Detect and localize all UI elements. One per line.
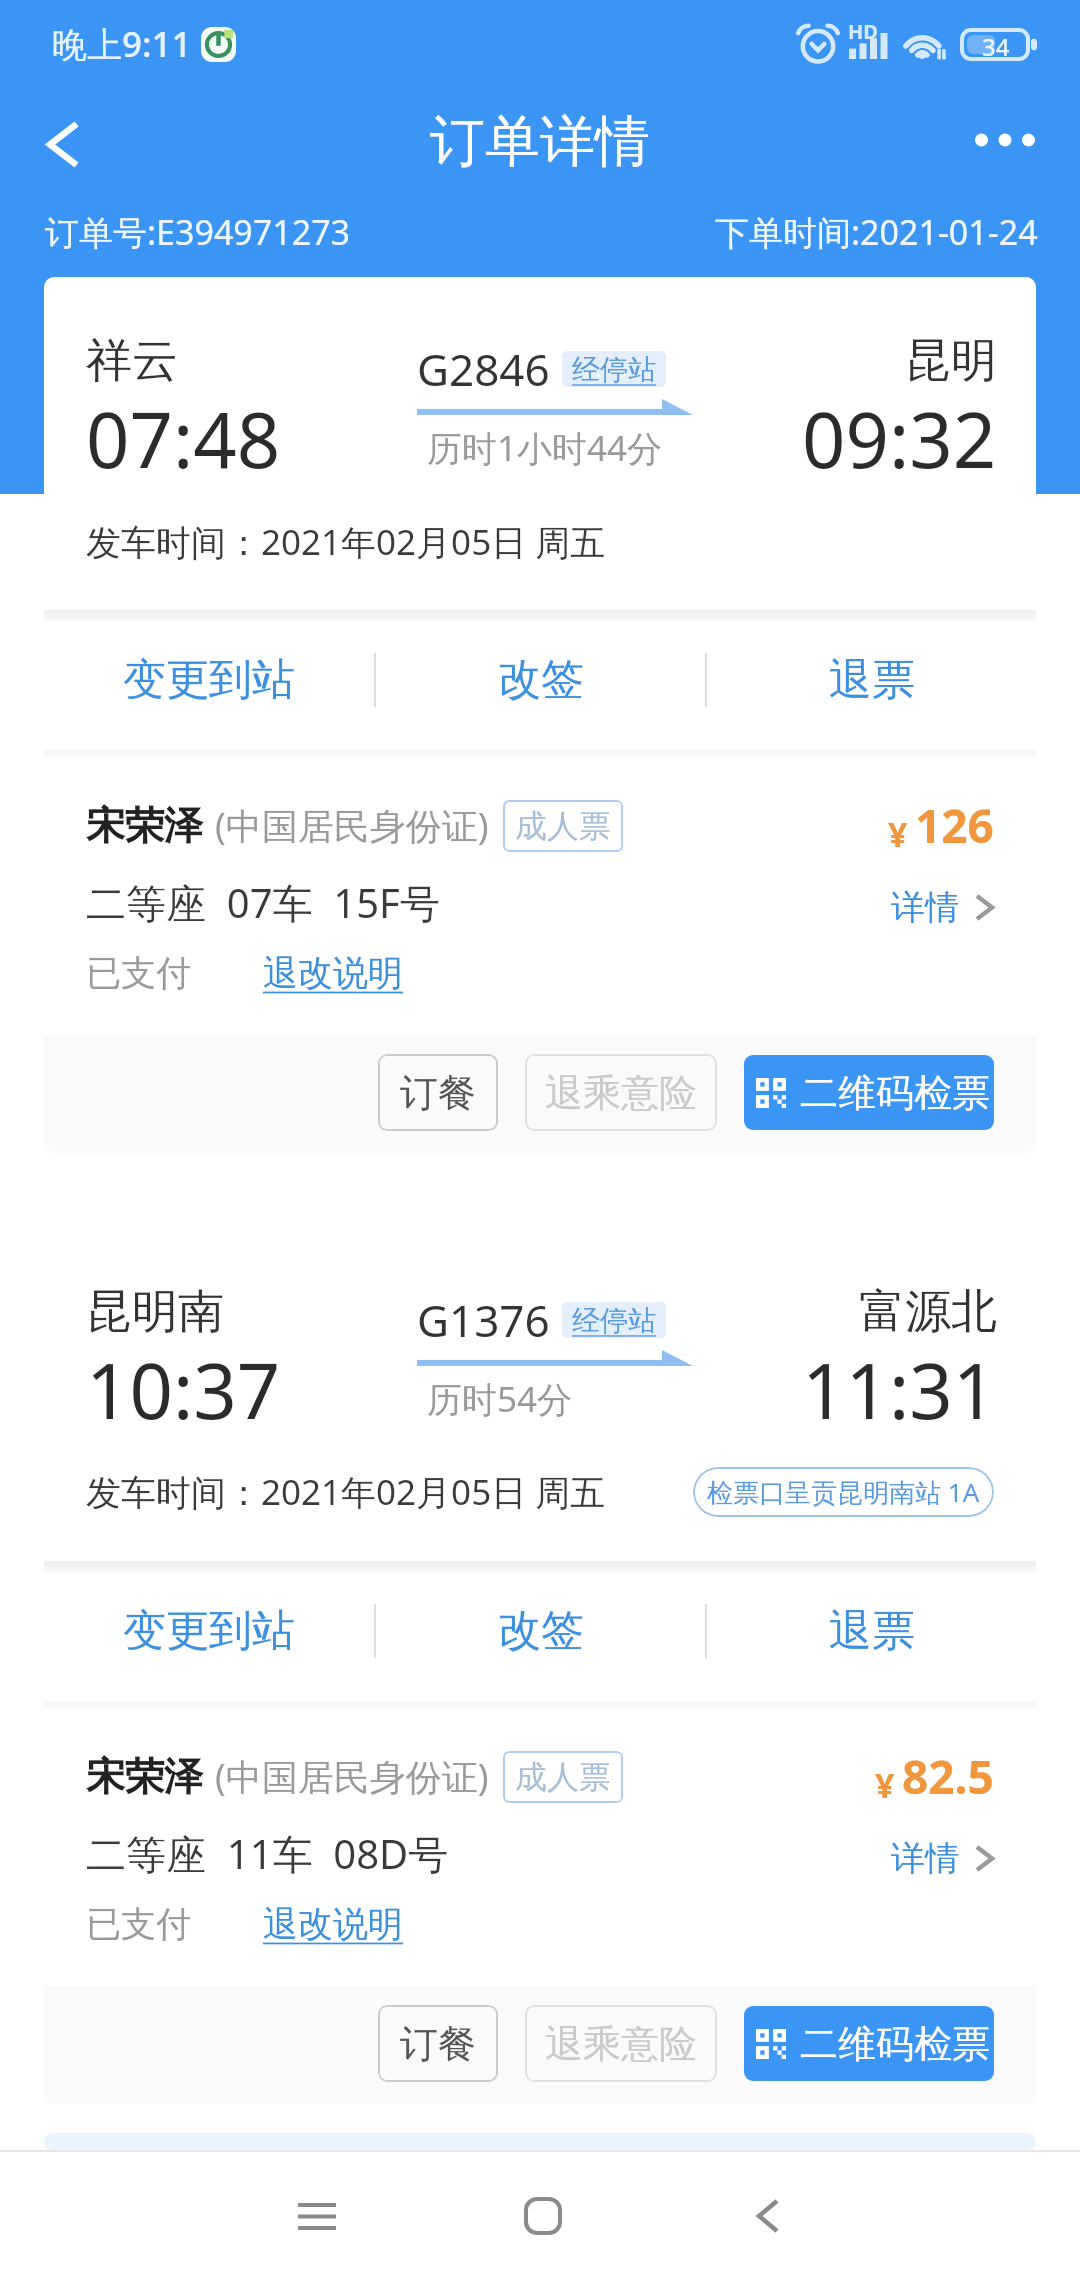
button[interactable]: 详情 bbox=[891, 1837, 994, 1880]
staticText: 变更到站 bbox=[123, 1604, 295, 1658]
button[interactable]: 退改说明 bbox=[263, 951, 403, 995]
staticText: 改签 bbox=[498, 653, 584, 707]
staticText: 二等座 07车 15F号 bbox=[86, 875, 440, 930]
staticText: 发车时间：2021年02月05日 周五 bbox=[86, 1468, 606, 1516]
staticText: 详情 bbox=[891, 886, 959, 929]
button[interactable]: 经停站 bbox=[562, 351, 666, 387]
button[interactable]: 订餐 bbox=[378, 2005, 498, 2082]
staticText: (中国居民身份证) bbox=[215, 801, 489, 850]
staticText: 退乘意险 bbox=[545, 2020, 697, 2068]
staticText: G1376 bbox=[417, 1290, 550, 1350]
staticText: 09:32 bbox=[802, 387, 997, 491]
staticText: G2846 bbox=[417, 339, 550, 399]
staticText: 订餐 bbox=[400, 2020, 476, 2068]
staticText: 变更到站 bbox=[123, 653, 295, 707]
button[interactable]: 改签 bbox=[376, 632, 705, 728]
button[interactable]: 退乘意险 bbox=[525, 2005, 717, 2082]
button[interactable]: 变更到站 bbox=[44, 1583, 374, 1679]
staticText: 订单详情 bbox=[430, 107, 650, 176]
button[interactable]: 变更到站 bbox=[44, 632, 374, 728]
staticText: 退改说明 bbox=[263, 951, 403, 995]
staticText: 富源北 bbox=[859, 1283, 997, 1341]
staticText: 成人票 bbox=[515, 806, 611, 846]
staticText: 宋荣泽 bbox=[86, 1752, 203, 1801]
staticText: 发车时间：2021年02月05日 周五 bbox=[86, 518, 606, 566]
staticText: 退票 bbox=[829, 1604, 915, 1658]
staticText: 退票 bbox=[829, 653, 915, 707]
staticText: 检票口呈贡昆明南站 1A bbox=[707, 1474, 980, 1510]
staticText: 订餐 bbox=[400, 1069, 476, 1117]
button[interactable]: Back bbox=[26, 108, 98, 180]
staticText: 82.5 bbox=[902, 1745, 994, 1808]
staticText: HD bbox=[848, 18, 878, 45]
staticText: 订单号:E394971273 bbox=[45, 209, 351, 255]
staticText: ¥ bbox=[875, 1762, 895, 1808]
staticText: 10:37 bbox=[86, 1338, 281, 1442]
staticText: 二维码检票 bbox=[800, 1069, 990, 1117]
button[interactable]: 经停站 bbox=[562, 1302, 666, 1338]
staticText: 昆明南 bbox=[86, 1283, 224, 1341]
button[interactable]: Back bbox=[655, 2152, 880, 2280]
staticText: 126 bbox=[915, 794, 994, 857]
staticText: 历时1小时44分 bbox=[427, 424, 663, 472]
staticText: 宋荣泽 bbox=[86, 801, 203, 850]
button[interactable]: 二维码检票 bbox=[744, 1055, 994, 1130]
staticText: 成人票 bbox=[515, 1757, 611, 1797]
staticText: 退改说明 bbox=[263, 1902, 403, 1946]
button[interactable]: Recent apps bbox=[204, 2152, 430, 2280]
button[interactable]: More options bbox=[960, 105, 1050, 175]
button[interactable]: 二维码检票 bbox=[744, 2006, 994, 2081]
button[interactable]: 退改说明 bbox=[263, 1902, 403, 1946]
staticText: 已支付 bbox=[86, 1902, 191, 1946]
staticText: 07:48 bbox=[86, 387, 281, 491]
staticText: 详情 bbox=[891, 1837, 959, 1880]
staticText: 改签 bbox=[498, 1604, 584, 1658]
button[interactable]: 退乘意险 bbox=[525, 1054, 717, 1131]
staticText: 历时54分 bbox=[427, 1375, 573, 1423]
staticText: 经停站 bbox=[572, 352, 656, 387]
staticText: (中国居民身份证) bbox=[215, 1752, 489, 1801]
button[interactable]: 退票 bbox=[707, 632, 1036, 728]
staticText: 祥云 bbox=[86, 332, 178, 390]
button[interactable]: 检票口呈贡昆明南站 1A bbox=[693, 1467, 994, 1517]
staticText: 晚上9:11 bbox=[52, 20, 192, 68]
staticText: ¥ bbox=[888, 811, 908, 857]
button[interactable]: 退票 bbox=[707, 1583, 1036, 1679]
button[interactable]: 详情 bbox=[891, 886, 994, 929]
staticText: 昆明 bbox=[905, 332, 997, 390]
button[interactable]: 订餐 bbox=[378, 1054, 498, 1131]
staticText: 11:31 bbox=[802, 1338, 997, 1442]
staticText: 34 bbox=[982, 30, 1010, 63]
button[interactable]: Home bbox=[430, 2152, 655, 2280]
staticText: 二维码检票 bbox=[800, 2020, 990, 2068]
staticText: 经停站 bbox=[572, 1303, 656, 1338]
staticText: 下单时间:2021-01-24 bbox=[715, 209, 1038, 255]
button[interactable]: 改签 bbox=[376, 1583, 705, 1679]
staticText: 二等座 11车 08D号 bbox=[86, 1826, 449, 1881]
staticText: 退乘意险 bbox=[545, 1069, 697, 1117]
staticText: 已支付 bbox=[86, 951, 191, 995]
